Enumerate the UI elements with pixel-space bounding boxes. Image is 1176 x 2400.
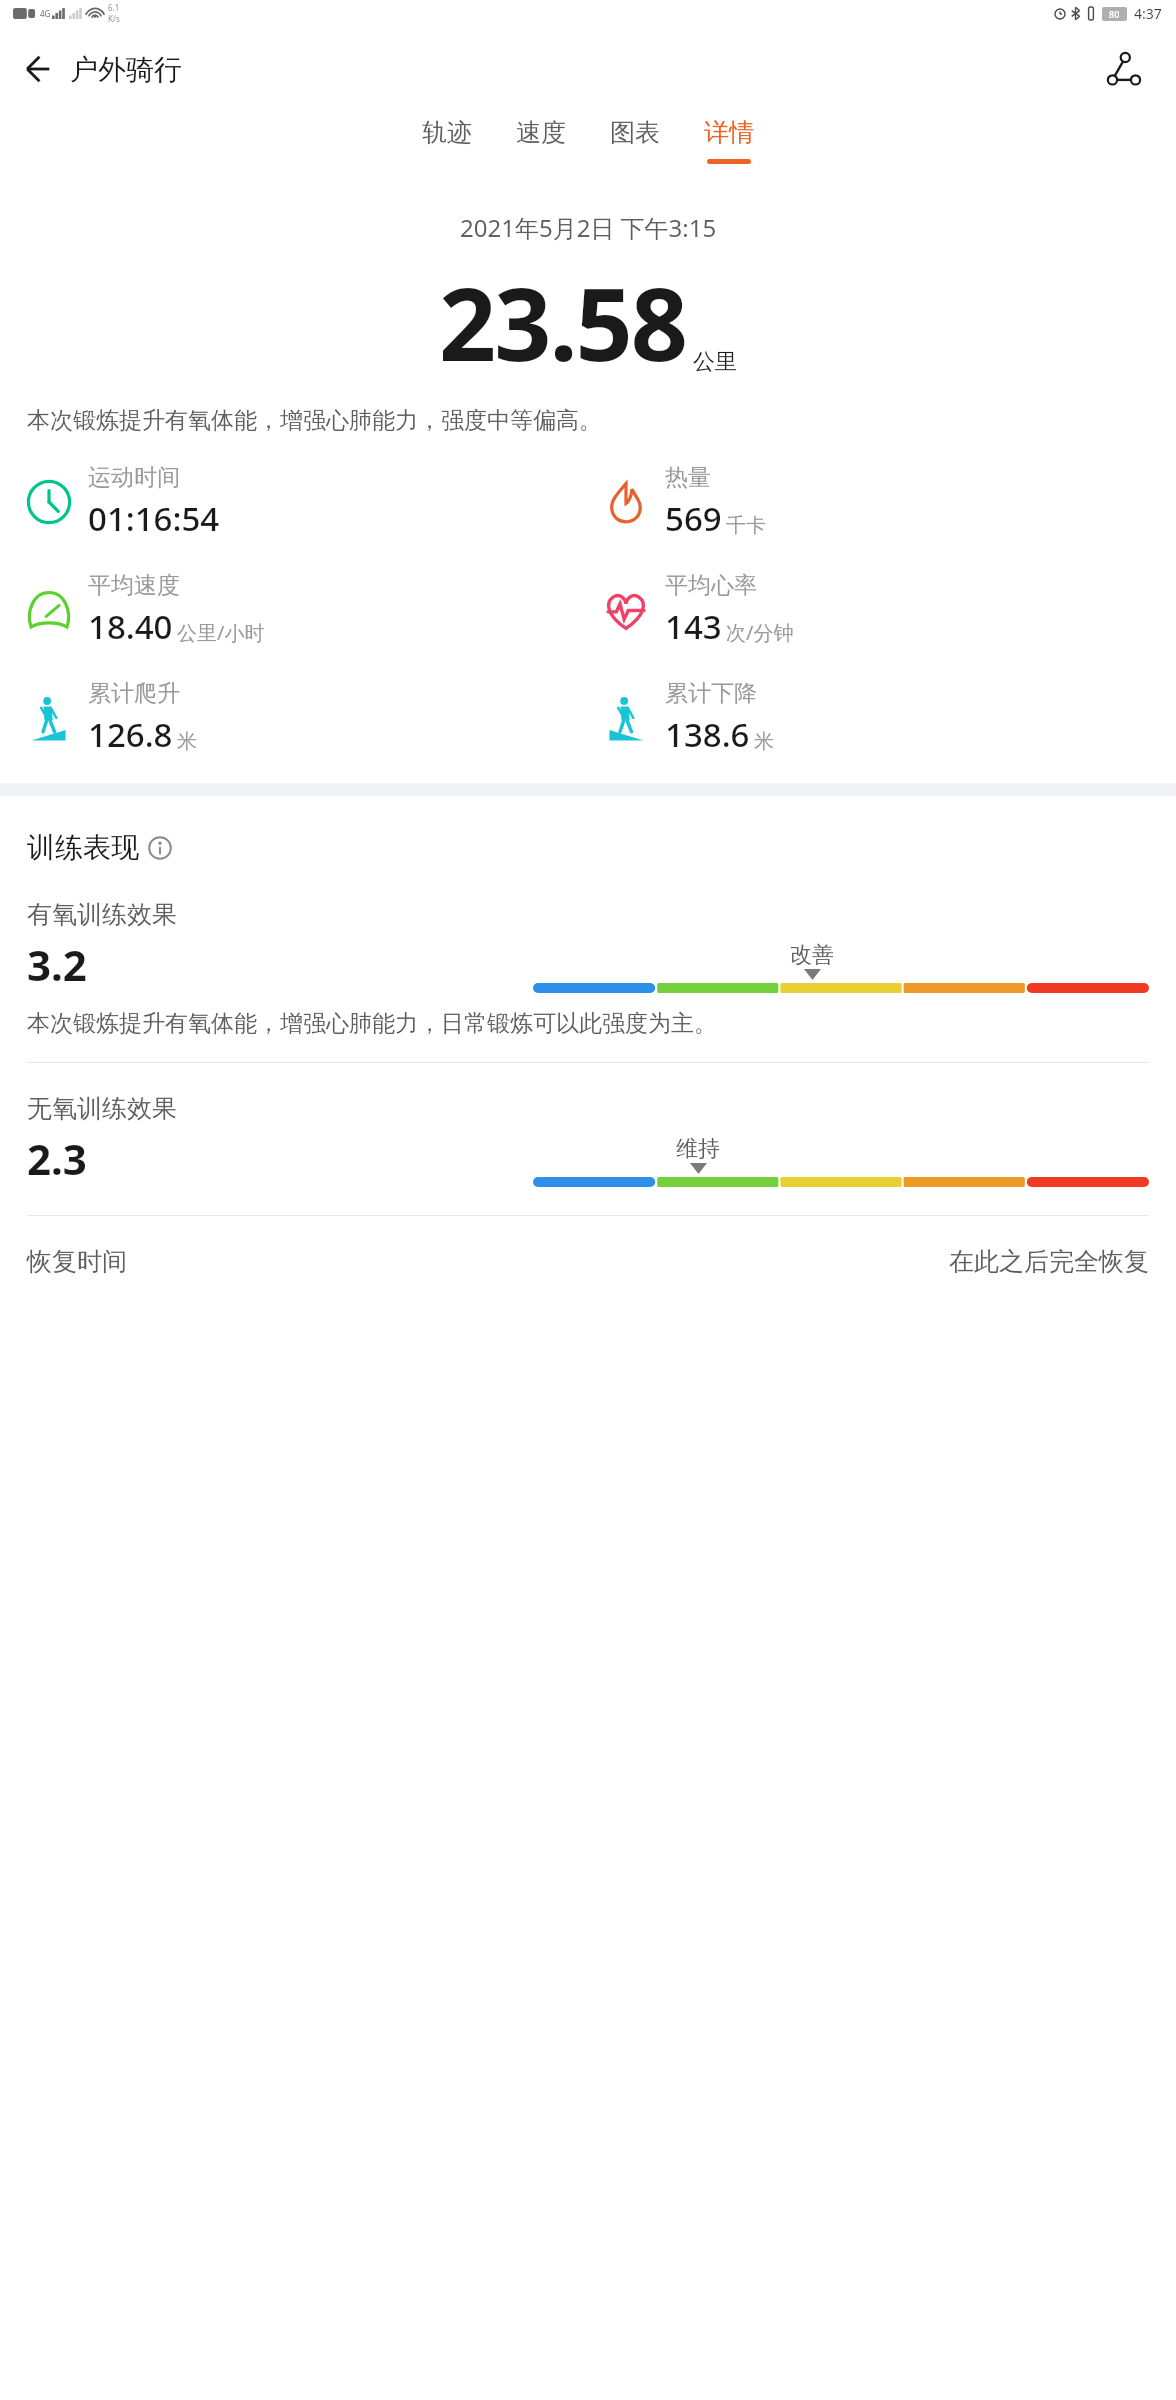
staticText: 143 [665,604,722,649]
staticText: 累计下降 [665,679,757,708]
staticText: 6.1 [108,2,120,13]
staticText: 改善 [790,941,834,969]
staticText: 维持 [676,1135,720,1163]
staticText: 4:37 [1134,4,1162,23]
staticText: 米 [754,729,774,754]
staticText: 01:16:54 [88,496,220,541]
staticText: 本次锻炼提升有氧体能，增强心肺能力，日常锻炼可以此强度为主。 [27,1009,717,1038]
staticText: 80 [1109,8,1120,20]
staticText: 详情 [704,117,754,148]
staticText: 次/分钟 [726,619,794,646]
staticText: 有氧训练效果 [27,899,177,930]
staticText: 米 [177,729,197,754]
button[interactable]: Share [1092,37,1156,101]
staticText: 无氧训练效果 [27,1093,177,1124]
staticText: 平均心率 [665,571,757,600]
staticText: 569 [665,496,722,541]
button[interactable]: 累计爬升 [22,679,599,757]
staticText: 18.40 [88,604,173,649]
staticText: 公里 [693,348,737,376]
staticText: 3.2 [27,936,87,993]
button[interactable]: 详情 [682,112,776,169]
button[interactable]: 累计下降 [599,679,1176,757]
button[interactable]: 平均速度 [22,571,599,649]
button[interactable]: Back [0,34,70,104]
button[interactable]: 图表 [588,112,682,169]
staticText: 恢复时间 [27,1246,127,1277]
button[interactable]: 训练表现 [27,830,172,865]
staticText: 138.6 [665,712,750,757]
staticText: 23.58 [439,254,686,390]
staticText: 运动时间 [88,463,180,492]
staticText: 训练表现 [27,830,139,865]
staticText: 126.8 [88,712,173,757]
button[interactable]: 运动时间 [22,463,599,541]
staticText: 平均速度 [88,571,180,600]
button[interactable]: 热量 [599,463,1176,541]
staticText: K/s [108,13,120,24]
staticText: 热量 [665,463,711,492]
button[interactable]: 速度 [494,112,588,169]
staticText: 轨迹 [422,117,472,148]
staticText: 在此之后完全恢复 [949,1246,1149,1277]
button[interactable]: 平均心率 [599,571,1176,649]
staticText: 4G [40,8,51,19]
staticText: 2.3 [27,1130,87,1187]
staticText: 公里/小时 [177,619,265,646]
staticText: 千卡 [726,513,766,538]
staticText: 累计爬升 [88,679,180,708]
staticText: 速度 [516,117,566,148]
staticText: 图表 [610,117,660,148]
button[interactable]: 轨迹 [400,112,494,169]
staticText: 本次锻炼提升有氧体能，增强心肺能力，强度中等偏高。 [27,406,1149,435]
staticText: 户外骑行 [70,52,182,87]
staticText: 2021年5月2日 下午3:15 [460,211,717,244]
